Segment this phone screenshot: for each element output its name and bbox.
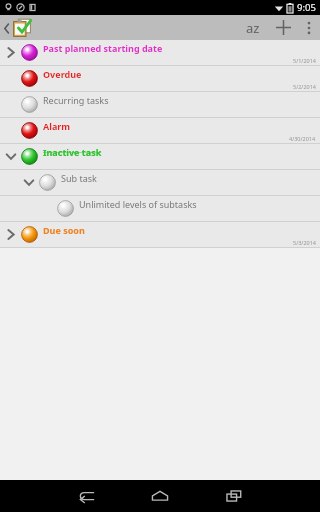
button[interactable]: More options [298,15,320,40]
staticText: 4/30/2014 [289,135,316,142]
staticText: 9:05 [297,1,316,14]
button[interactable]: Alarm [0,118,320,143]
staticText: az [246,19,260,37]
staticText: 5/3/2014 [293,239,316,246]
button[interactable]: Due soon [0,222,320,247]
staticText: Due soon [43,224,85,236]
staticText: Past planned starting date [43,42,163,54]
button[interactable]: Sub task [0,170,320,195]
button[interactable]: Sort alphabetically [238,15,268,40]
button[interactable]: Add task [268,15,298,40]
button[interactable]: Home [123,480,197,512]
button[interactable]: Up, app home [0,18,38,38]
staticText: 5/2/2014 [293,83,316,90]
staticText: Inactive task [43,146,102,158]
button[interactable]: Recent apps [197,480,271,512]
button[interactable]: Back [49,480,123,512]
button[interactable]: Unlimited levels of subtasks [0,196,320,221]
staticText: Unlimited levels of subtasks [79,198,197,210]
button[interactable]: Inactive task [0,144,320,169]
staticText: Sub task [61,172,97,184]
button[interactable]: Overdue [0,66,320,91]
staticText: Overdue [43,68,82,80]
staticText: Alarm [43,120,71,132]
staticText: Recurring tasks [43,94,109,106]
button[interactable]: Recurring tasks [0,92,320,117]
staticText: 5/1/2014 [293,57,316,64]
button[interactable]: Past planned starting date [0,40,320,65]
